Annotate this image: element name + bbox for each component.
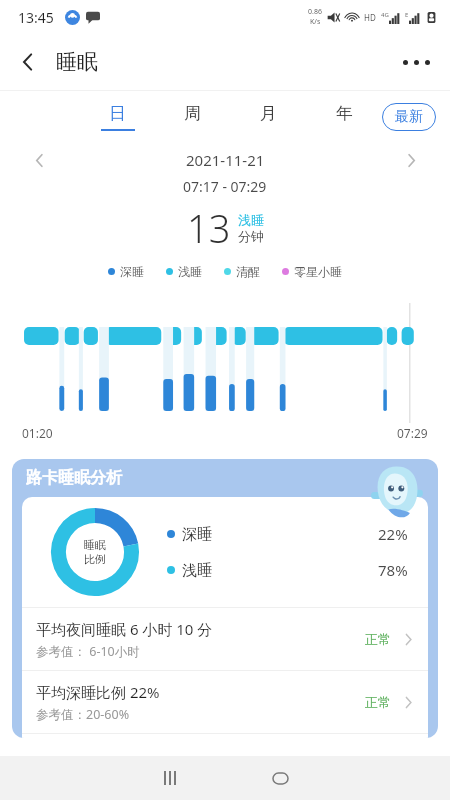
staticText: 4G (381, 11, 389, 19)
staticText: 参考值： 6-10小时 (36, 643, 140, 660)
staticText: 0.86 (308, 7, 322, 17)
staticText: 正常 (365, 694, 391, 710)
staticText: 平均深睡比例 22% (36, 682, 160, 702)
button[interactable]: Back (6, 40, 50, 84)
button[interactable]: 平均夜间睡眠 6 小时 10 分 (22, 608, 428, 670)
staticText: 13 (187, 202, 231, 254)
staticText: HD (364, 12, 376, 23)
staticText: 13:45 (18, 8, 54, 27)
staticText: 平均夜间睡眠 6 小时 10 分 (36, 619, 213, 639)
staticText: 睡眠 (56, 49, 98, 75)
staticText: 分钟 (238, 228, 264, 244)
button[interactable]: 年 (306, 91, 382, 143)
staticText: 零星小睡 (294, 264, 342, 279)
button[interactable]: 周 (155, 91, 230, 143)
staticText: 01:20 (22, 425, 53, 441)
staticText: 年 (336, 103, 353, 124)
staticText: 清醒 (236, 264, 260, 279)
button[interactable]: Home (260, 758, 300, 798)
staticText: 睡眠 (84, 538, 106, 552)
staticText: 07:17 - 07:29 (183, 177, 267, 196)
button[interactable]: Recent apps (150, 758, 190, 798)
staticText: 深睡 (120, 264, 144, 279)
button[interactable]: Previous day (22, 143, 56, 177)
staticText: K/s (310, 17, 321, 27)
staticText: 比例 (84, 552, 106, 566)
staticText: 浅睡 (182, 561, 212, 580)
staticText: 22% (378, 524, 408, 544)
staticText: 07:29 (397, 425, 428, 441)
button[interactable]: More options (392, 40, 440, 84)
button[interactable]: 日 (80, 91, 155, 143)
staticText: 深睡 (182, 525, 212, 544)
staticText: 浅睡 (238, 212, 264, 228)
button[interactable]: 最新 (382, 103, 436, 131)
staticText: 参考值：20-60% (36, 706, 130, 723)
staticText: 周 (184, 103, 201, 124)
button[interactable]: 月 (230, 91, 306, 143)
staticText: 78% (378, 560, 408, 580)
staticText: E (405, 11, 409, 19)
staticText: 最新 (395, 108, 423, 126)
staticText: 2021-11-21 (186, 150, 265, 170)
staticText: 月 (260, 103, 277, 124)
staticText: 正常 (365, 631, 391, 647)
staticText: 浅睡 (178, 264, 202, 279)
button[interactable]: Next day (394, 143, 428, 177)
button[interactable]: 平均深睡比例 22% (22, 671, 428, 733)
staticText: 日 (109, 103, 126, 124)
staticText: 路卡睡眠分析 (26, 468, 122, 488)
